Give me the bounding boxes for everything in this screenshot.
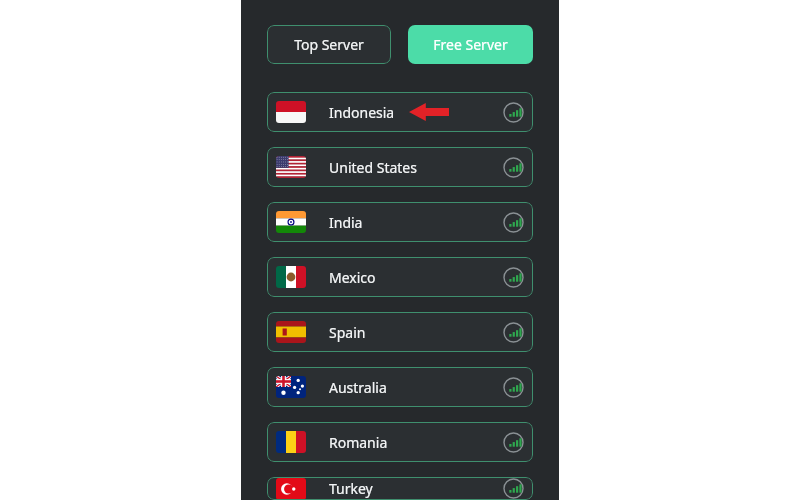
staticText: Australia bbox=[329, 378, 387, 397]
button[interactable]: Top Server bbox=[267, 25, 391, 64]
staticText: Spain bbox=[329, 323, 366, 342]
button[interactable]: India bbox=[267, 202, 533, 242]
button[interactable]: United States bbox=[267, 147, 533, 187]
other: Signal strength bbox=[503, 478, 524, 499]
staticText: United States bbox=[329, 158, 417, 177]
other: Signal strength bbox=[503, 102, 524, 123]
other: Signal strength bbox=[503, 212, 524, 233]
button[interactable]: Australia bbox=[267, 367, 533, 407]
button[interactable]: Indonesia bbox=[267, 92, 533, 132]
button[interactable]: Turkey bbox=[267, 477, 533, 500]
staticText: Top Server bbox=[294, 35, 364, 54]
other: Signal strength bbox=[503, 267, 524, 288]
staticText: Free Server bbox=[433, 35, 508, 54]
button[interactable]: Spain bbox=[267, 312, 533, 352]
staticText: Turkey bbox=[329, 479, 373, 498]
staticText: Mexico bbox=[329, 268, 376, 287]
button[interactable]: Free Server bbox=[408, 25, 533, 64]
button[interactable]: Mexico bbox=[267, 257, 533, 297]
other: Signal strength bbox=[503, 157, 524, 178]
staticText: Romania bbox=[329, 433, 388, 452]
other: Signal strength bbox=[503, 432, 524, 453]
other: Signal strength bbox=[503, 322, 524, 343]
staticText: Indonesia bbox=[329, 103, 395, 122]
staticText: India bbox=[329, 213, 363, 232]
button[interactable]: Romania bbox=[267, 422, 533, 462]
other: Signal strength bbox=[503, 377, 524, 398]
